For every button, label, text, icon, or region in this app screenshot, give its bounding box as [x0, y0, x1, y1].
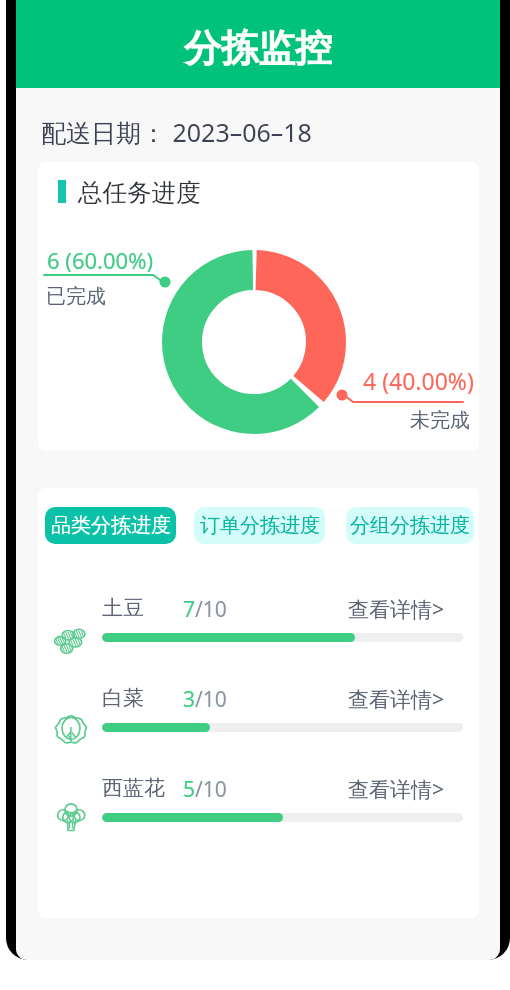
other: 白菜: [53, 713, 89, 745]
staticText: 5/10: [183, 775, 227, 804]
staticText: 已完成: [46, 284, 106, 309]
staticText: 品类分拣进度: [51, 513, 171, 538]
staticText: 西蓝花: [102, 775, 165, 801]
button[interactable]: 土豆: [38, 578, 479, 658]
staticText: 6 (60.00%): [47, 245, 154, 275]
staticText: 订单分拣进度: [200, 513, 320, 538]
staticText: 4 (40.00%): [363, 365, 474, 396]
staticText: 配送日期： 2023–06–18: [41, 115, 312, 149]
button[interactable]: 分组分拣进度: [346, 507, 474, 544]
button[interactable]: 品类分拣进度: [45, 507, 176, 544]
staticText: 土豆: [102, 595, 144, 621]
staticText: 总任务进度: [78, 177, 201, 208]
button[interactable]: 查看详情>: [348, 595, 445, 624]
staticText: 分拣监控: [184, 25, 332, 72]
button[interactable]: 白菜: [38, 668, 479, 748]
staticText: 3/10: [183, 685, 227, 714]
staticText: 7/10: [183, 595, 227, 624]
button[interactable]: 订单分拣进度: [194, 507, 325, 544]
button[interactable]: 查看详情>: [348, 775, 445, 804]
staticText: 白菜: [102, 685, 144, 711]
other: 西蓝花: [53, 803, 89, 835]
other: 土豆: [53, 623, 89, 655]
button[interactable]: 查看详情>: [348, 685, 445, 714]
button[interactable]: 西蓝花: [38, 758, 479, 838]
staticText: 分组分拣进度: [350, 513, 470, 538]
staticText: 未完成: [410, 408, 470, 433]
